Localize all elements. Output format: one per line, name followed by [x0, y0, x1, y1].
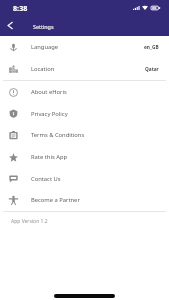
- staticText: Settings: [33, 23, 54, 30]
- staticText: Privacy Policy: [31, 110, 68, 118]
- button[interactable]: Language: [0, 36, 169, 58]
- staticText: Location: [31, 65, 55, 73]
- staticText: Contact Us: [31, 175, 61, 183]
- button[interactable]: Back: [0, 15, 20, 35]
- staticText: en_GB: [144, 44, 159, 51]
- button[interactable]: Rate this App: [0, 146, 169, 168]
- staticText: Language: [31, 43, 59, 51]
- staticText: Qatar: [145, 66, 159, 73]
- staticText: 8:38: [13, 3, 28, 13]
- staticText: About eHoris: [31, 88, 67, 96]
- staticText: App Version 1.2: [11, 218, 48, 225]
- button[interactable]: Become a Partner: [0, 189, 169, 211]
- staticText: Rate this App: [31, 153, 68, 161]
- button[interactable]: Contact Us: [0, 168, 169, 189]
- button[interactable]: Location: [0, 58, 169, 80]
- button[interactable]: Terms & Conditions: [0, 124, 169, 146]
- button[interactable]: About eHoris: [0, 81, 169, 103]
- button[interactable]: Privacy Policy: [0, 103, 169, 124]
- staticText: Terms & Conditions: [31, 131, 85, 139]
- staticText: Become a Partner: [31, 196, 80, 204]
